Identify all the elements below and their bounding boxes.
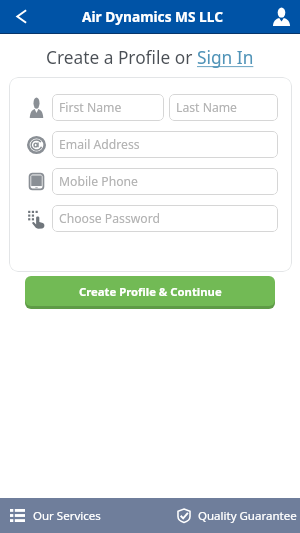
staticText: Create Profile & Continue [79, 284, 222, 299]
button[interactable]: Sign In [197, 46, 254, 70]
button[interactable]: Create Profile & Continue [25, 276, 275, 306]
button[interactable]: Mobile Phone [52, 168, 278, 195]
button[interactable]: Our Services [0, 498, 150, 533]
staticText: Air Dynamics MS LLC [82, 7, 223, 26]
staticText: Choose Password [59, 210, 160, 227]
button[interactable]: Back [0, 0, 42, 33]
staticText: Email Address [59, 136, 140, 153]
button[interactable]: Last Name [169, 94, 278, 121]
staticText: First Name [59, 99, 122, 116]
button[interactable]: First Name [52, 94, 164, 121]
button[interactable]: Choose Password [52, 205, 278, 232]
staticText: Create a Profile or [46, 46, 197, 70]
button[interactable]: Quality Guarantee [150, 498, 300, 533]
staticText: Quality Guarantee [198, 508, 297, 524]
button[interactable]: Email Address [52, 131, 278, 158]
staticText: Last Name [176, 99, 237, 116]
button[interactable]: Account [262, 0, 300, 33]
staticText: Our Services [33, 508, 101, 524]
staticText: Mobile Phone [59, 173, 138, 190]
